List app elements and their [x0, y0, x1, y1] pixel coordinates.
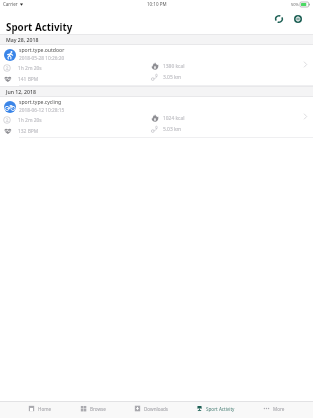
- staticText: 50%: [291, 2, 299, 7]
- button[interactable]: Sport Activity: [196, 403, 235, 414]
- staticText: Jun 12, 2018: [6, 88, 36, 95]
- button[interactable]: Browse: [80, 403, 106, 414]
- staticText: 1h 2m 20s: [18, 117, 42, 124]
- staticText: 10:10 PM: [147, 1, 167, 7]
- staticText: More: [273, 406, 285, 412]
- staticText: sport.type.cycling: [19, 99, 62, 106]
- staticText: 2018-05-28 10:26:20: [19, 55, 65, 62]
- staticText: 1380 kcal: [163, 63, 185, 70]
- button[interactable]: sport.type.outdoor: [0, 45, 313, 86]
- staticText: May 28, 2018: [6, 36, 39, 43]
- staticText: 1024 kcal: [163, 115, 185, 122]
- staticText: Browse: [90, 406, 106, 412]
- staticText: Downloads: [144, 406, 169, 412]
- staticText: Sport Activity: [206, 406, 235, 412]
- staticText: 2018-06-12 10:28:15: [19, 107, 65, 114]
- staticText: 141 BPM: [18, 76, 39, 83]
- button[interactable]: Info: [291, 12, 305, 26]
- staticText: Sport Activity: [6, 21, 73, 34]
- staticText: Home: [38, 406, 52, 412]
- staticText: 3.05 km: [163, 74, 182, 81]
- staticText: sport.type.outdoor: [19, 47, 65, 54]
- button[interactable]: Downloads: [134, 403, 169, 414]
- staticText: 1h 2m 20s: [18, 65, 42, 72]
- staticText: 5.03 km: [163, 126, 182, 133]
- button[interactable]: More: [263, 403, 285, 414]
- button[interactable]: Refresh: [272, 12, 286, 26]
- staticText: 132 BPM: [18, 128, 39, 135]
- button[interactable]: Home: [28, 403, 52, 414]
- staticText: Carrier: [3, 1, 18, 7]
- button[interactable]: sport.type.cycling: [0, 97, 313, 138]
